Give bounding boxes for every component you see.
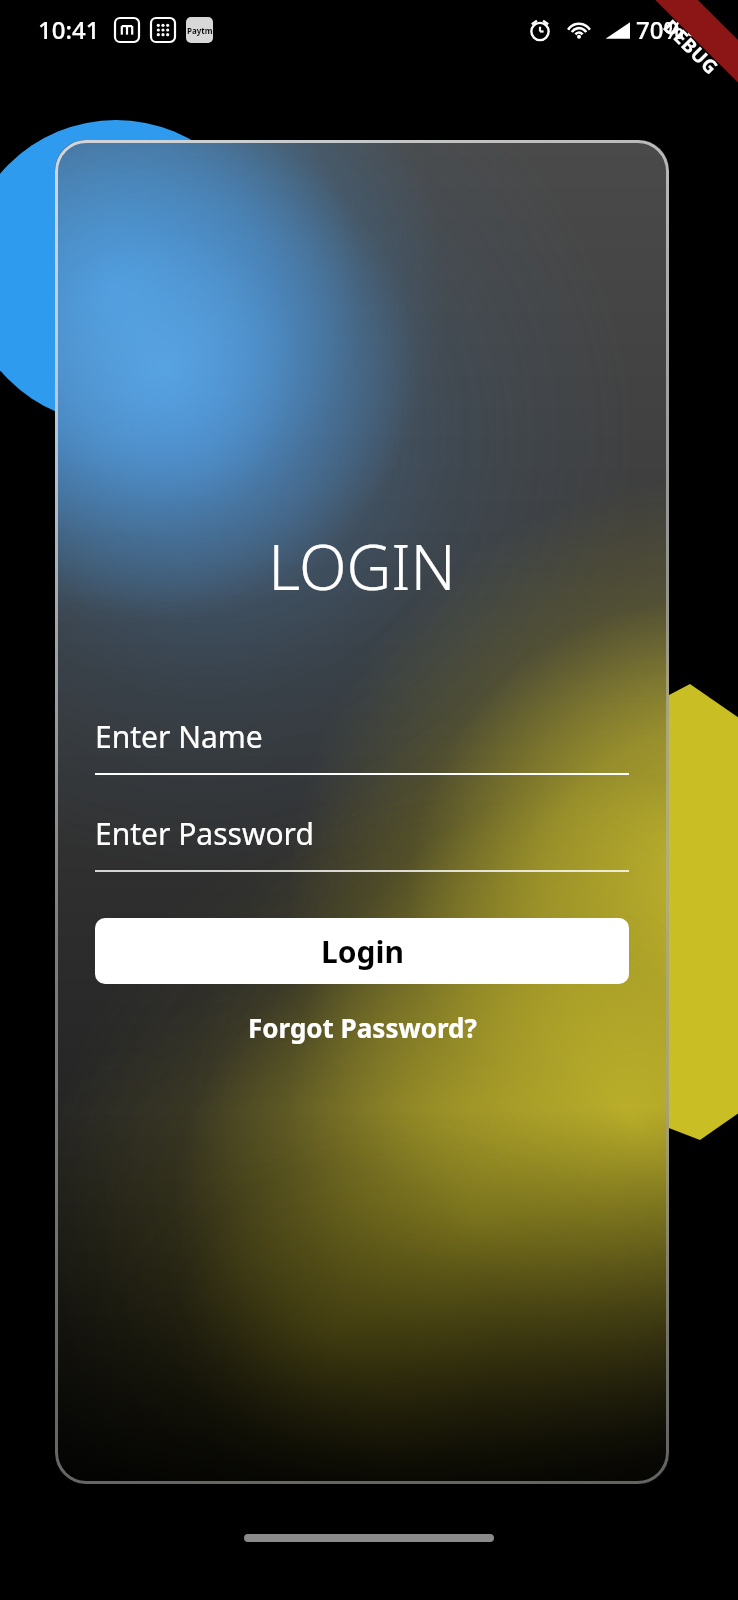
staticText: Login bbox=[321, 931, 404, 972]
staticText: Enter Name bbox=[95, 716, 263, 757]
button[interactable]: Enter Password bbox=[95, 813, 629, 872]
button[interactable]: Login bbox=[95, 918, 629, 984]
staticText: DEBUG bbox=[658, 14, 724, 80]
staticText: 10:41 bbox=[38, 13, 100, 46]
staticText: LOGIN bbox=[55, 524, 669, 608]
button[interactable]: Enter Name bbox=[95, 716, 629, 775]
staticText: Forgot Password? bbox=[248, 1010, 477, 1045]
staticText: 70% bbox=[636, 13, 684, 46]
button[interactable]: Forgot Password? bbox=[95, 1002, 629, 1052]
other: Debug banner bbox=[620, 0, 738, 118]
staticText: Enter Password bbox=[95, 813, 314, 854]
staticText: Paytm bbox=[187, 25, 213, 36]
